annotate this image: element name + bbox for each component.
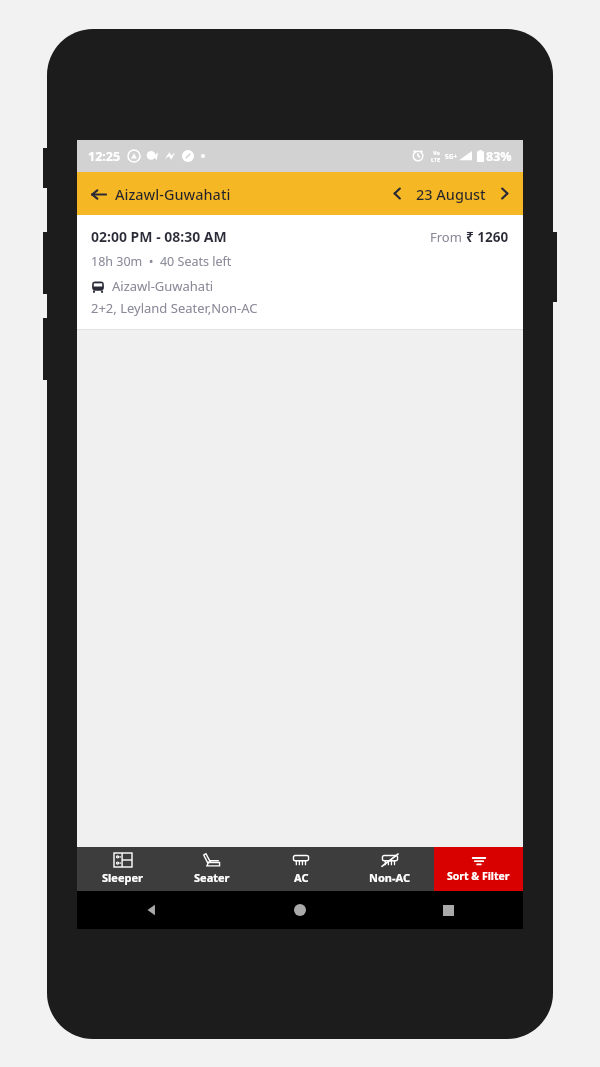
button[interactable]: Sort & Filter [434,847,523,891]
staticText: Aizawl-Guwahati [112,277,214,295]
other: Home [294,904,306,916]
staticText: 23 August [416,184,486,204]
other: Previous day [391,187,404,200]
staticText: 83% [486,148,512,165]
button[interactable]: Sleeper [77,847,167,891]
staticText: Non-AC [369,870,410,885]
staticText: 2+2, Leyland Seater,Non-AC [91,299,258,317]
other: Next day [498,187,511,200]
staticText: 5G+ [445,152,458,161]
staticText: Sleeper [102,870,143,885]
staticText: Seater [194,870,230,885]
button[interactable]: Back [77,891,225,929]
button[interactable]: 23 August [410,176,492,212]
button[interactable]: 02:00 PM - 08:30 AM [77,215,523,329]
button[interactable]: Home [225,891,374,929]
staticText: 02:00 PM - 08:30 AM [91,227,227,246]
other: Back [144,903,158,917]
button[interactable]: Seater [167,847,256,891]
button[interactable]: Non-AC [345,847,434,891]
button[interactable]: Back [77,176,239,212]
staticText: ₹ 1260 [466,228,509,246]
staticText: LTE [431,156,441,163]
button[interactable]: Recents [374,891,523,929]
button[interactable]: Previous day [385,177,410,210]
staticText: From [430,228,466,246]
staticText: Vo [433,149,440,156]
button[interactable]: Next day [492,177,523,210]
staticText: 18h 30m • 40 Seats left [91,253,232,270]
staticText: Sort & Filter [447,869,510,883]
staticText: Aizawl-Guwahati [115,184,231,204]
other: Back [91,187,106,202]
button[interactable]: AC [256,847,345,891]
staticText: AC [294,870,309,885]
staticText: 12:25 [88,148,121,165]
